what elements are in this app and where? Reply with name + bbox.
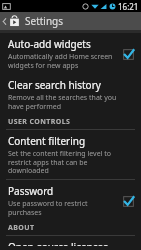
button[interactable]: Navigate up xyxy=(0,15,22,27)
staticText: Clear search history xyxy=(8,78,101,92)
staticText: USER CONTROLS xyxy=(8,117,71,127)
staticText: Use password to restrict purchases xyxy=(8,199,117,217)
button[interactable]: Content filtering xyxy=(0,130,141,179)
button[interactable]: Toggle Password xyxy=(121,194,135,208)
button[interactable]: Password xyxy=(0,180,141,221)
button[interactable]: Toggle Auto-add widgets xyxy=(121,47,135,61)
staticText: Content filtering xyxy=(8,134,86,148)
button[interactable]: Clear search history xyxy=(0,74,141,115)
staticText: Open-source licences xyxy=(8,240,108,246)
staticText: Automatically add Home screen widgets fo… xyxy=(8,52,117,70)
staticText: Password xyxy=(8,184,54,198)
staticText: 16:21 xyxy=(118,1,139,12)
button[interactable]: Open-source licences xyxy=(0,236,141,250)
staticText: Set the content filtering level to restr… xyxy=(8,149,121,175)
staticText: Auto-add widgets xyxy=(8,37,91,51)
staticText: Remove all the searches that you have pe… xyxy=(8,93,121,111)
staticText: ABOUT xyxy=(8,223,35,233)
staticText: Settings xyxy=(25,14,64,28)
button[interactable]: Auto-add widgets xyxy=(0,33,141,74)
